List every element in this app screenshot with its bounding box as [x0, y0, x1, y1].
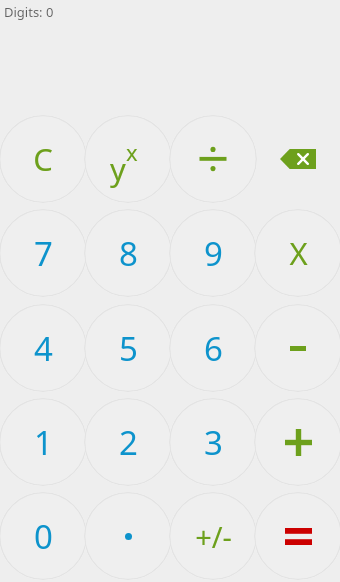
button[interactable]: 9 — [169, 209, 257, 297]
button[interactable]: y to the power x — [84, 115, 172, 203]
button[interactable]: Decimal point — [84, 492, 172, 580]
staticText: 9 — [204, 231, 223, 276]
staticText: X — [289, 232, 308, 274]
staticText: Digits: 0 — [4, 3, 54, 21]
button[interactable]: 0 — [0, 492, 87, 580]
button[interactable]: 8 — [84, 209, 172, 297]
button[interactable]: Backspace — [254, 115, 340, 203]
button[interactable]: Equals — [254, 492, 340, 580]
button[interactable]: 2 — [84, 398, 172, 486]
staticText: C — [33, 138, 53, 180]
button[interactable]: 4 — [0, 304, 87, 392]
staticText: 7 — [34, 231, 53, 276]
staticText: 2 — [119, 420, 138, 465]
button[interactable]: 6 — [169, 304, 257, 392]
button[interactable]: 3 — [169, 398, 257, 486]
staticText: 4 — [34, 326, 53, 371]
staticText: 8 — [119, 231, 138, 276]
staticText: +/- — [195, 517, 232, 556]
button[interactable]: +/- — [169, 492, 257, 580]
staticText: 1 — [34, 420, 53, 465]
button[interactable]: 1 — [0, 398, 87, 486]
button[interactable]: 5 — [84, 304, 172, 392]
staticText: y — [110, 148, 126, 190]
button[interactable]: 7 — [0, 209, 87, 297]
button[interactable]: Plus — [254, 398, 340, 486]
button[interactable]: C — [0, 115, 87, 203]
button[interactable]: X — [254, 209, 340, 297]
button[interactable]: Minus — [254, 304, 340, 392]
staticText: 3 — [204, 420, 223, 465]
staticText: x — [126, 137, 138, 167]
staticText: 5 — [119, 326, 138, 371]
staticText: 6 — [204, 326, 223, 371]
button[interactable]: Divide — [169, 115, 257, 203]
staticText: 0 — [34, 514, 53, 559]
